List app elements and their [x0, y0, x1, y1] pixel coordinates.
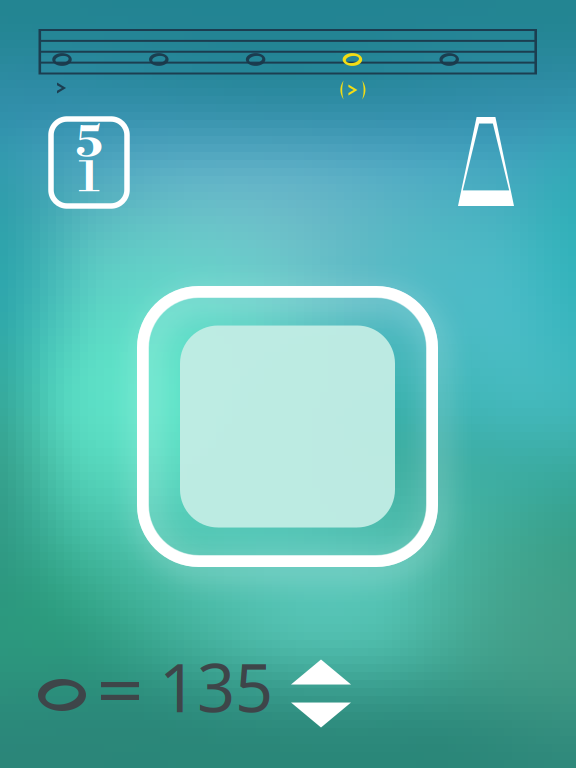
button[interactable]: Increase tempo — [291, 656, 351, 687]
button[interactable]: Time signature 5 over 1 — [51, 119, 127, 206]
staticText: 135 — [159, 642, 273, 730]
button[interactable]: Metronome sound settings — [449, 111, 523, 212]
button[interactable]: Start metronome — [115, 264, 460, 589]
staticText: 5 — [75, 115, 102, 170]
staticText: 1 — [78, 150, 99, 205]
button[interactable]: Decrease tempo — [291, 699, 351, 730]
